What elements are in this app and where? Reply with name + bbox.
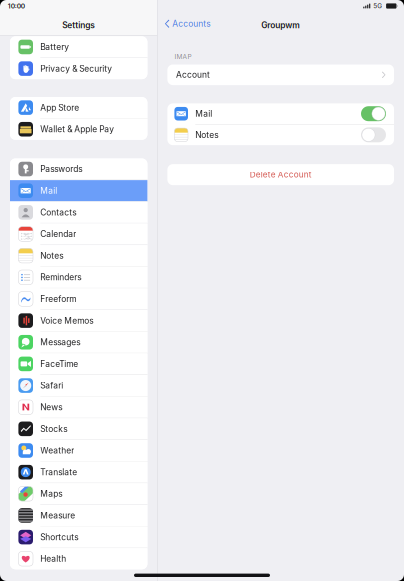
staticText: Notes	[195, 130, 218, 140]
staticText: Freeform	[40, 294, 76, 304]
button[interactable]: Messages	[10, 332, 147, 353]
staticText: Groupwm	[261, 20, 300, 30]
staticText: Weather	[40, 445, 74, 456]
staticText: App Store	[40, 102, 79, 113]
button[interactable]: FaceTime	[10, 353, 147, 374]
staticText: 10:00	[8, 2, 25, 10]
staticText: Notes	[40, 251, 63, 261]
button[interactable]: Wallet & Apple Pay	[10, 119, 147, 140]
staticText: Messages	[40, 337, 80, 347]
staticText: Calendar	[40, 229, 76, 239]
staticText: Account	[176, 70, 210, 80]
button[interactable]: News	[10, 397, 147, 418]
button[interactable]: Contacts	[10, 202, 147, 223]
button[interactable]: Weather	[10, 440, 147, 461]
staticText: Maps	[40, 489, 62, 499]
staticText: Wallet & Apple Pay	[40, 124, 114, 134]
button[interactable]: Mail	[167, 103, 394, 124]
staticText: Health	[40, 554, 66, 564]
button[interactable]: Voice Memos	[10, 310, 147, 331]
staticText: Accounts	[172, 19, 210, 29]
button[interactable]: Account	[167, 64, 394, 85]
button[interactable]: Shortcuts	[10, 526, 147, 548]
button[interactable]: Passwords	[10, 158, 147, 180]
button[interactable]: Measure	[10, 505, 147, 526]
staticText: Contacts	[40, 207, 76, 217]
button[interactable]: Translate	[10, 462, 147, 483]
staticText: Measure	[40, 510, 75, 521]
staticText: Shortcuts	[40, 532, 78, 542]
button[interactable]: Reminders	[10, 267, 147, 288]
button[interactable]: Health	[10, 548, 147, 569]
staticText: Voice Memos	[40, 315, 93, 326]
staticText: FaceTime	[40, 359, 78, 369]
staticText: 5G	[373, 2, 382, 10]
button[interactable]: Safari	[10, 375, 147, 396]
button[interactable]: Maps	[10, 483, 147, 504]
staticText: News	[40, 402, 62, 412]
button[interactable]: Freeform	[10, 288, 147, 309]
staticText: Reminders	[40, 272, 81, 282]
button[interactable]: Notes	[10, 245, 147, 266]
staticText: Privacy & Security	[40, 63, 112, 74]
button[interactable]: Battery	[10, 36, 147, 57]
button[interactable]: Calendar	[10, 223, 147, 245]
staticText: Battery	[40, 42, 69, 52]
staticText: Translate	[40, 467, 77, 477]
button[interactable]: Privacy & Security	[10, 58, 147, 79]
staticText: IMAP	[175, 53, 192, 60]
button[interactable]: Accounts	[157, 16, 210, 32]
staticText: Mail	[40, 186, 57, 196]
button[interactable]: Stocks	[10, 418, 147, 439]
staticText: Delete Account	[250, 170, 312, 179]
button[interactable]: Delete Account	[167, 164, 394, 185]
button[interactable]: Notes	[167, 125, 394, 145]
staticText: Passwords	[40, 164, 82, 174]
button[interactable]: Mail	[10, 180, 147, 201]
staticText: Stocks	[40, 424, 67, 434]
staticText: Mail	[195, 109, 212, 119]
button[interactable]: App Store	[10, 97, 147, 118]
staticText: Safari	[40, 380, 63, 391]
staticText: Settings	[62, 20, 95, 30]
